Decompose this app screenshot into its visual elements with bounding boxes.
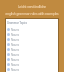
staticText: Nouns: [11, 33, 19, 37]
button[interactable]: Nouns: [6, 52, 58, 57]
button[interactable]: Nouns: [6, 42, 58, 47]
button[interactable]: Nouns: [6, 57, 58, 62]
staticText: english grammar rules with examples: [0, 12, 64, 16]
button[interactable]: Nouns: [6, 32, 58, 37]
button[interactable]: Nouns: [6, 47, 58, 52]
button[interactable]: Nouns: [6, 37, 58, 42]
staticText: Nouns: [11, 38, 19, 42]
staticText: Grammar Topics: [7, 21, 27, 25]
staticText: Nouns: [11, 68, 19, 72]
staticText: Nouns: [11, 43, 19, 47]
staticText: Nouns: [11, 63, 19, 67]
button[interactable]: Nouns: [6, 67, 58, 72]
staticText: Nouns: [11, 53, 19, 57]
staticText: Nouns: [11, 48, 19, 52]
staticText: Nouns: [11, 58, 19, 62]
staticText: Leicht verständliche: [0, 5, 64, 9]
staticText: Nouns: [11, 28, 19, 32]
button[interactable]: Nouns: [6, 62, 58, 67]
button[interactable]: Nouns: [6, 27, 58, 32]
